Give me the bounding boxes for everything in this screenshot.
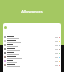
button[interactable]	[3, 59, 61, 63]
staticText: Allowances	[21, 9, 43, 14]
button[interactable]	[3, 51, 61, 55]
button[interactable]	[3, 35, 61, 39]
button[interactable]	[3, 63, 61, 67]
button[interactable]	[3, 55, 61, 59]
button[interactable]	[3, 39, 61, 43]
button[interactable]	[3, 43, 61, 47]
button[interactable]	[3, 47, 61, 51]
